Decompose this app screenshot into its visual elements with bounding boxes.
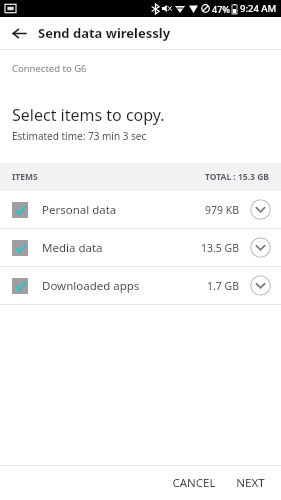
staticText: NEXT [236, 475, 265, 491]
button[interactable]: Expand [250, 199, 271, 220]
button[interactable]: Toggle item [0, 267, 281, 304]
staticText: Estimated time: 73 min 3 sec [12, 129, 147, 143]
staticText: 13.5 GB [201, 241, 240, 255]
button[interactable]: Toggle item [0, 229, 281, 266]
staticText: Connected to G6 [12, 62, 87, 75]
button[interactable]: CANCEL [164, 469, 224, 497]
staticText: ITEMS [12, 171, 38, 183]
staticText: 979 KB [205, 203, 240, 217]
staticText: 1.7 GB [207, 279, 240, 293]
button[interactable]: Toggle item [12, 202, 28, 218]
button[interactable]: Toggle item [0, 191, 281, 228]
staticText: Media data [42, 240, 103, 256]
staticText: CANCEL [172, 475, 216, 491]
staticText: TOTAL : 15.3 GB [205, 171, 269, 183]
staticText: Personal data [42, 202, 117, 218]
staticText: 9:24 AM [240, 2, 277, 15]
staticText: Downloaded apps [42, 278, 140, 294]
button[interactable]: Back [6, 20, 32, 46]
button[interactable]: Expand [250, 237, 271, 258]
staticText: Select items to copy. [12, 104, 165, 126]
button[interactable]: Toggle item [12, 240, 28, 256]
staticText: 47% [212, 3, 230, 15]
button[interactable]: Expand [250, 275, 271, 296]
button[interactable]: NEXT [228, 469, 273, 497]
staticText: Send data wirelessly [38, 24, 171, 42]
button[interactable]: Toggle item [12, 278, 28, 294]
